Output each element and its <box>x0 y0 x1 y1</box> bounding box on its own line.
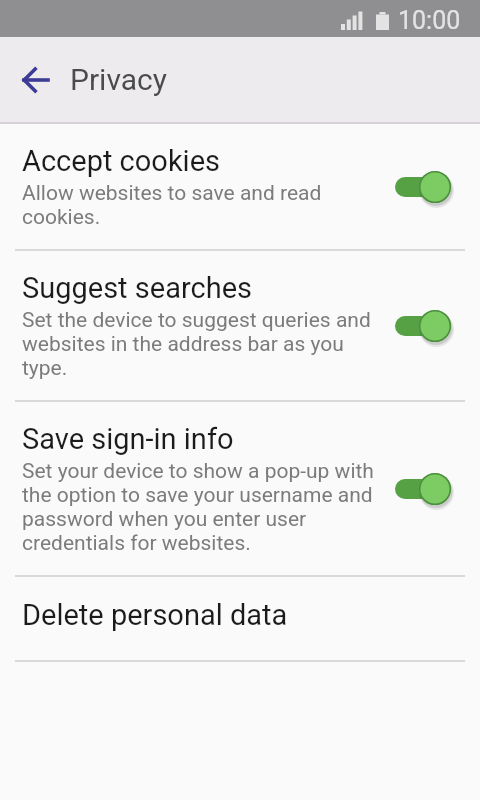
staticText: Suggest searches <box>22 271 252 305</box>
button[interactable]: Accept cookies <box>0 124 480 249</box>
button[interactable] <box>0 37 72 122</box>
staticText: Delete personal data <box>22 598 288 632</box>
button[interactable]: Delete personal data <box>0 577 480 660</box>
button[interactable]: Suggest searches <box>0 251 480 400</box>
staticText: Allow websites to save and read cookies. <box>22 181 322 229</box>
staticText: Save sign-in info <box>22 422 234 456</box>
staticText: Accept cookies <box>22 144 220 178</box>
staticText: Privacy <box>70 62 167 97</box>
staticText: 10:00 <box>398 6 461 35</box>
staticText: Set the device to suggest queries and we… <box>22 308 371 380</box>
staticText: Set your device to show a pop-up with th… <box>22 459 374 555</box>
button[interactable]: Save sign-in info <box>0 402 480 575</box>
